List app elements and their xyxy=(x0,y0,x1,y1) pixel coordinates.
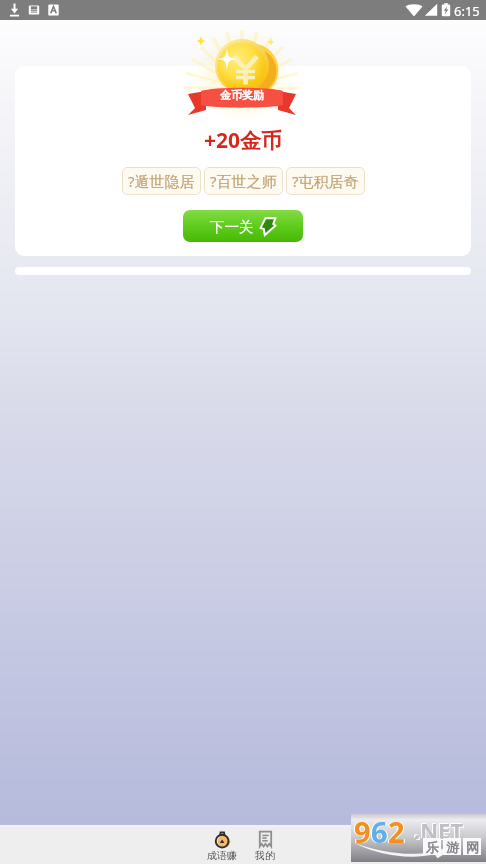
staticText: ?屯积居奇 xyxy=(292,171,359,191)
button[interactable]: 成语赚 xyxy=(200,827,244,864)
staticText: 2 xyxy=(387,812,404,851)
staticText: 下一关 xyxy=(210,218,254,236)
staticText: 游 xyxy=(446,839,459,855)
staticText: .NET xyxy=(414,815,464,845)
staticText: 2 xyxy=(389,812,406,851)
staticText: 6 xyxy=(371,812,388,851)
staticText: 9 xyxy=(355,812,372,851)
staticText: ?遁世隐居 xyxy=(128,171,195,191)
button[interactable]: 下一关 xyxy=(183,210,303,242)
staticText: 乐 xyxy=(426,839,439,855)
staticText: +20金币 xyxy=(204,126,283,155)
button[interactable]: ?屯积居奇 xyxy=(286,167,365,195)
staticText: 成语赚 xyxy=(207,849,237,862)
staticText: 金币奖励 xyxy=(220,88,264,102)
staticText: 6 xyxy=(370,812,387,851)
staticText: .NET xyxy=(413,814,463,844)
staticText: 2 xyxy=(388,812,405,851)
staticText: 9 xyxy=(354,812,371,851)
staticText: 6:15 xyxy=(454,2,480,20)
button[interactable]: 我的 xyxy=(243,827,287,864)
button[interactable]: ?百世之师 xyxy=(204,167,283,195)
button[interactable]: ?遁世隐居 xyxy=(122,167,201,195)
staticText: 9 xyxy=(353,812,370,851)
staticText: 我的 xyxy=(255,849,275,862)
staticText: 6 xyxy=(372,812,389,851)
staticText: ?百世之师 xyxy=(210,171,277,191)
staticText: 网 xyxy=(466,839,479,855)
staticText: .NET xyxy=(415,816,465,846)
